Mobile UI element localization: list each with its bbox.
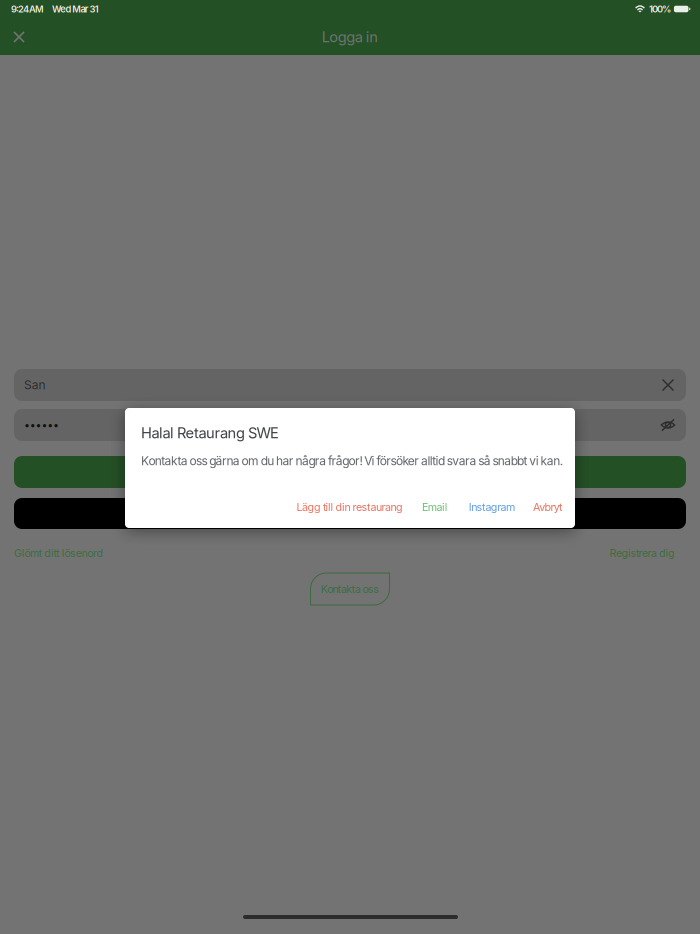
button[interactable]: Lägg till din restaurang: [296, 500, 403, 513]
button[interactable]: Email: [422, 500, 448, 513]
button[interactable]: Kontakta oss: [310, 573, 389, 605]
button[interactable]: Close: [3, 21, 35, 53]
button[interactable]: Clear text: [656, 373, 680, 397]
staticText: Halal Retaurang SWE: [141, 424, 279, 442]
button[interactable]: Avbryt: [533, 500, 562, 513]
staticText: Lägg till din restaurang: [296, 500, 403, 513]
staticText: Avbryt: [533, 500, 562, 513]
staticText: Instagram: [469, 500, 515, 513]
staticText: Registrera dig: [609, 546, 675, 559]
button[interactable]: Registrera dig: [609, 546, 675, 559]
button[interactable]: Show password: [656, 413, 680, 437]
button[interactable]: Instagram: [469, 500, 515, 513]
staticText: Kontakta oss gärna om du har några frågo…: [141, 454, 563, 468]
staticText: 9:24 AM: [11, 3, 44, 15]
staticText: 100%: [649, 3, 671, 15]
staticText: ••••••: [24, 418, 59, 431]
button[interactable]: Glömt ditt lösenord: [14, 546, 104, 559]
staticText: Wed Mar 31: [52, 3, 99, 15]
button[interactable]: Fortsätt med Apple: [14, 498, 686, 529]
staticText: Kontakta oss: [321, 582, 379, 595]
staticText: Logga in: [322, 28, 378, 46]
staticText: Glömt ditt lösenord: [14, 546, 104, 559]
staticText: San: [24, 378, 45, 392]
staticText: Email: [422, 500, 448, 513]
button[interactable]: Logga in: [14, 456, 686, 488]
